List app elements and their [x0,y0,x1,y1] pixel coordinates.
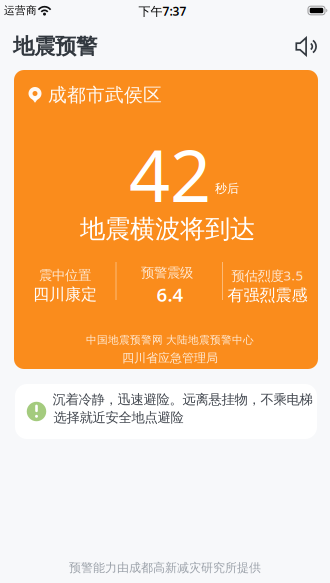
staticText: 中国地震预警网 大陆地震预警中心 [86,333,254,346]
staticText: 沉着冷静，迅速避险。远离悬挂物，不乘电梯 [52,391,312,408]
staticText: 预警震级 [141,265,193,281]
staticText: 预估烈度3.5 [231,267,303,284]
button[interactable]: 声音 [295,36,319,56]
staticText: 42 [129,126,211,222]
staticText: 预警能力由成都高新减灾研究所提供 [69,560,261,575]
staticText: 成都市武侯区 [48,83,162,106]
staticText: 下午7:37 [138,3,186,19]
staticText: 6.4 [156,282,183,307]
staticText: 四川康定 [33,285,97,304]
staticText: 有强烈震感 [227,285,307,305]
staticText: 选择就近安全地点避险 [53,409,183,426]
staticText: 秒后 [215,181,239,196]
staticText: 地震预警 [13,33,97,60]
staticText: 地震横波将到达 [80,213,255,244]
staticText: 运营商 [4,4,37,17]
staticText: 四川省应急管理局 [122,351,218,365]
staticText: 震中位置 [39,267,91,284]
